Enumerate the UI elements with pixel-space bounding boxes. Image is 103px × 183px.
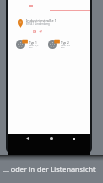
- staticText: Max. 22 kW: [61, 43, 73, 49]
- staticText: ... oder in der Listenansicht: [3, 164, 96, 174]
- button[interactable]: Industriestraße 1: [16, 16, 82, 30]
- button[interactable]: Home: [43, 134, 59, 143]
- staticText: 87541 Lindenberg: [26, 22, 50, 26]
- button[interactable]: Add to favourites: [33, 30, 36, 33]
- staticText: Max. 3,7 kW: [29, 43, 41, 49]
- staticText: Typ 1: [29, 41, 37, 45]
- button[interactable]: Back: [19, 134, 35, 143]
- staticText: Typ 2: [61, 41, 69, 45]
- button[interactable]: Navigate: [39, 30, 42, 33]
- staticText: Industriestraße 1: [26, 18, 57, 23]
- button[interactable]: Typ 2: [48, 39, 79, 49]
- button[interactable]: Typ 1: [16, 39, 47, 49]
- button[interactable]: Recent apps: [66, 134, 82, 143]
